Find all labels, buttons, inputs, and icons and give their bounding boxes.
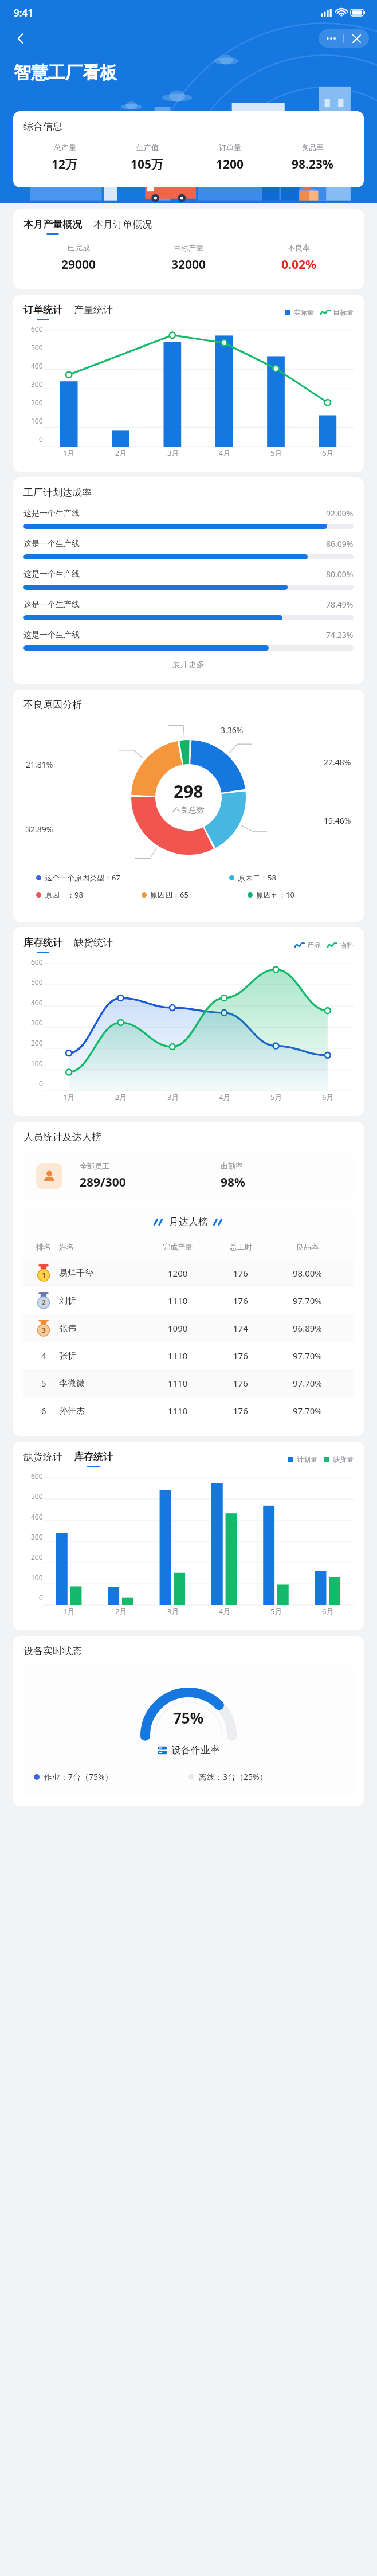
button[interactable]: 这是一个生产线	[23, 629, 354, 660]
button[interactable]: 2	[23, 1287, 354, 1314]
staticText: 这是一个生产线	[23, 569, 80, 580]
staticText: 这是一个生产线	[23, 600, 80, 610]
staticText: 32000	[171, 256, 206, 273]
staticText: 2	[42, 1298, 46, 1307]
staticText: 排名	[36, 1242, 51, 1251]
staticText: 97.70%	[293, 1295, 322, 1306]
staticText: 1110	[168, 1377, 188, 1389]
button[interactable]: 库存统计	[74, 1451, 113, 1467]
button[interactable]: 这是一个生产线	[23, 569, 354, 599]
button[interactable]: 订单统计	[23, 304, 62, 320]
staticText: 4	[41, 1350, 46, 1361]
staticText: 这个一个原因类型：67	[45, 872, 120, 883]
staticText: 1月	[63, 1092, 75, 1102]
button[interactable]: 缺货统计	[23, 1451, 62, 1467]
button[interactable]: 1	[23, 1259, 354, 1287]
staticText: 75%	[173, 1708, 204, 1728]
staticText: 离线：3台（25%）	[199, 1771, 268, 1782]
staticText: 3.36%	[221, 725, 244, 735]
staticText: 1月	[63, 1606, 75, 1616]
staticText: 298	[174, 780, 203, 803]
staticText: 200	[31, 1552, 43, 1561]
staticText: 176	[233, 1405, 248, 1416]
staticText: 李微微	[59, 1378, 85, 1389]
staticText: 9:41	[14, 6, 33, 19]
staticText: 人员统计及达人榜	[23, 1131, 101, 1143]
staticText: 实际量	[293, 308, 314, 316]
staticText: 400	[31, 361, 43, 370]
staticText: 100	[31, 416, 43, 425]
staticText: 29000	[61, 256, 96, 273]
button[interactable]: 缺货统计	[74, 937, 113, 953]
button[interactable]: Close	[344, 29, 369, 48]
staticText: 3	[42, 1325, 46, 1334]
button[interactable]: 6	[23, 1397, 354, 1424]
staticText: 已完成	[68, 243, 90, 252]
staticText: 订单统计	[23, 304, 62, 316]
staticText: 97.70%	[293, 1350, 322, 1361]
staticText: 完成产量	[163, 1242, 193, 1251]
staticText: 21.81%	[26, 759, 53, 770]
staticText: 良品率	[301, 143, 324, 152]
staticText: 600	[31, 957, 43, 966]
staticText: 105万	[131, 156, 164, 173]
button[interactable]: 5	[23, 1369, 354, 1397]
staticText: 200	[31, 398, 43, 407]
staticText: 原因四：65	[150, 890, 188, 900]
staticText: 100	[31, 1573, 43, 1582]
staticText: 98.23%	[292, 156, 333, 173]
staticText: 缺货统计	[74, 937, 113, 949]
staticText: 97.70%	[293, 1405, 322, 1416]
button[interactable]: 产量统计	[74, 304, 113, 320]
staticText: 6月	[322, 1606, 334, 1616]
button[interactable]: 全部员工	[23, 1151, 354, 1201]
staticText: 289/300	[80, 1174, 126, 1191]
staticText: 月达人榜	[169, 1216, 208, 1228]
staticText: 97.70%	[293, 1377, 322, 1389]
staticText: 设备实时状态	[23, 1645, 82, 1657]
staticText: 100	[31, 1059, 43, 1068]
button[interactable]: More	[319, 29, 343, 48]
staticText: 0.02%	[281, 256, 316, 273]
button[interactable]: 库存统计	[23, 937, 62, 953]
staticText: 刘忻	[59, 1295, 76, 1306]
staticText: 张伟	[59, 1323, 76, 1334]
staticText: 库存统计	[23, 937, 62, 949]
button[interactable]: 综合信息	[13, 111, 364, 187]
button[interactable]: 本月订单概况	[93, 218, 152, 235]
button[interactable]: 3	[23, 1314, 354, 1342]
staticText: 12万	[52, 156, 78, 173]
staticText: 智慧工厂看板	[14, 62, 117, 84]
staticText: 综合信息	[23, 120, 62, 132]
staticText: 2月	[115, 1606, 127, 1616]
staticText: 原因三：98	[45, 890, 83, 900]
staticText: 300	[31, 1018, 43, 1027]
staticText: 订单量	[219, 143, 241, 152]
staticText: 4月	[219, 1092, 231, 1102]
staticText: 78.49%	[326, 599, 354, 610]
staticText: 计划量	[297, 1455, 317, 1463]
staticText: 这是一个生产线	[23, 630, 80, 640]
staticText: 174	[233, 1322, 248, 1334]
staticText: 总工时	[230, 1242, 252, 1251]
button[interactable]: 这是一个生产线	[23, 599, 354, 629]
staticText: 张忻	[59, 1350, 76, 1361]
button[interactable]: 75%	[23, 1665, 354, 1795]
staticText: 92.00%	[326, 508, 354, 519]
staticText: 这是一个生产线	[23, 508, 80, 519]
staticText: 6月	[322, 1092, 334, 1102]
button[interactable]: 展开更多	[23, 660, 354, 670]
staticText: 缺货统计	[23, 1451, 62, 1463]
staticText: 19.46%	[324, 815, 351, 826]
button[interactable]: 本月产量概况	[23, 218, 82, 235]
staticText: 物料	[340, 941, 354, 949]
staticText: 5月	[270, 448, 282, 458]
staticText: 22.48%	[324, 757, 351, 768]
button[interactable]: 这是一个生产线	[23, 508, 354, 538]
button[interactable]: 4	[23, 1342, 354, 1369]
staticText: 500	[31, 977, 43, 986]
staticText: 不良原因分析	[23, 699, 82, 711]
button[interactable]: Back	[9, 27, 32, 50]
staticText: 6月	[322, 448, 334, 458]
button[interactable]: 这是一个生产线	[23, 538, 354, 569]
